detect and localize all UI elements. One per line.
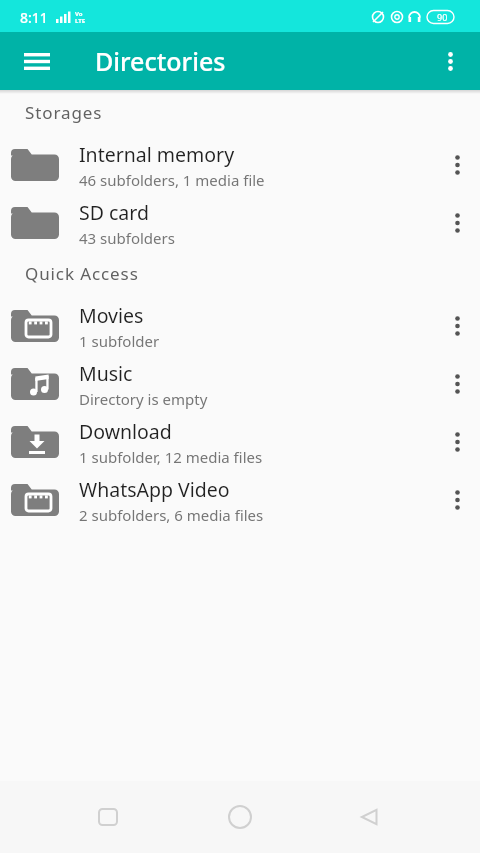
staticText: Directory is empty bbox=[79, 389, 208, 409]
button[interactable] bbox=[434, 471, 480, 529]
button[interactable] bbox=[334, 782, 404, 852]
staticText: Storages bbox=[25, 101, 103, 124]
staticText: 1 subfolder, 12 media files bbox=[79, 447, 263, 467]
button[interactable]: Internal memory bbox=[0, 136, 480, 194]
button[interactable] bbox=[434, 355, 480, 413]
staticText: Movies bbox=[79, 302, 144, 329]
button[interactable]: SD card bbox=[0, 194, 480, 252]
button[interactable] bbox=[13, 37, 61, 85]
staticText: SD card bbox=[79, 199, 149, 226]
button[interactable] bbox=[73, 782, 143, 852]
staticText: 2 subfolders, 6 media files bbox=[79, 505, 264, 525]
staticText: Music bbox=[79, 360, 133, 387]
staticText: 43 subfolders bbox=[79, 228, 175, 248]
staticText: Download bbox=[79, 418, 172, 445]
button[interactable]: Download bbox=[0, 413, 480, 471]
staticText: Internal memory bbox=[79, 141, 235, 168]
button[interactable] bbox=[426, 37, 474, 85]
button[interactable] bbox=[205, 782, 275, 852]
button[interactable] bbox=[434, 297, 480, 355]
staticText: 8:11 bbox=[20, 8, 48, 27]
button[interactable]: Movies bbox=[0, 297, 480, 355]
staticText: WhatsApp Video bbox=[79, 476, 230, 503]
staticText: Directories bbox=[95, 44, 226, 78]
button[interactable] bbox=[434, 413, 480, 471]
button[interactable]: WhatsApp Video bbox=[0, 471, 480, 529]
staticText: Vo LTE bbox=[75, 10, 86, 25]
staticText: 1 subfolder bbox=[79, 331, 160, 351]
staticText: 46 subfolders, 1 media file bbox=[79, 170, 265, 190]
staticText: Quick Access bbox=[25, 262, 139, 285]
staticText: 90 bbox=[437, 11, 448, 23]
button[interactable] bbox=[434, 136, 480, 194]
button[interactable] bbox=[434, 194, 480, 252]
button[interactable]: Music bbox=[0, 355, 480, 413]
